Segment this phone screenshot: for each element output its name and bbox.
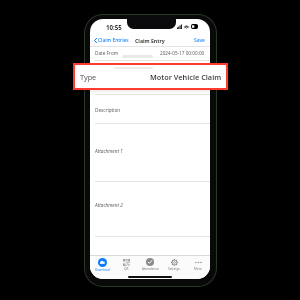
staticText: QR <box>124 267 129 271</box>
staticText: Attendance <box>142 267 159 271</box>
staticText: Description <box>95 107 121 113</box>
staticText: Claim Entry <box>135 37 165 44</box>
staticText: Motor Vehicle Claim <box>150 72 222 82</box>
staticText: Attachment 2 <box>95 202 123 208</box>
staticText: Attachment 1 <box>95 148 123 154</box>
staticText: More <box>194 267 202 271</box>
button[interactable]: Date From <box>90 46 210 60</box>
button[interactable]: More <box>186 257 210 272</box>
button[interactable]: Save <box>194 37 210 44</box>
button[interactable]: Settings <box>162 257 186 272</box>
button[interactable]: Download <box>90 257 114 272</box>
button[interactable]: Description <box>90 94 210 123</box>
other: Download <box>98 258 107 267</box>
button[interactable]: Type <box>90 60 210 74</box>
button[interactable]: Attachment 1 <box>90 123 210 181</box>
other: QR <box>123 259 130 266</box>
button[interactable]: Attendance <box>138 257 162 272</box>
staticText: Date From <box>95 50 119 56</box>
other: More <box>195 259 202 266</box>
button[interactable]: Date To <box>90 73 210 94</box>
staticText: 10:55 <box>106 23 122 31</box>
staticText: Type <box>95 64 106 70</box>
button[interactable]: QR <box>114 257 138 272</box>
other: Attendance <box>146 258 154 266</box>
staticText: Type <box>80 72 97 82</box>
staticText: Settings <box>168 267 180 271</box>
staticText: 2024-05-17 00:00:00 <box>160 50 205 56</box>
staticText: Download <box>95 268 110 272</box>
staticText: Claim Entries <box>98 37 129 44</box>
other: Settings <box>171 259 178 266</box>
button[interactable]: Claim Entries <box>90 37 132 44</box>
button[interactable]: Attachment 2 <box>90 181 210 235</box>
button[interactable]: Type <box>75 65 226 88</box>
staticText: Motor Vehicle Claim <box>161 64 205 70</box>
